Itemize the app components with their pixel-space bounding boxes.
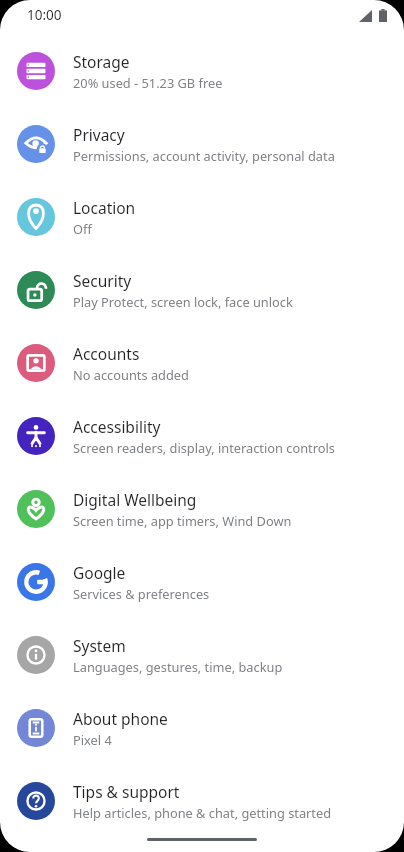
staticText: Location bbox=[73, 197, 136, 218]
staticText: Digital Wellbeing bbox=[73, 489, 197, 510]
button[interactable]: About phone bbox=[0, 691, 404, 764]
button[interactable]: Digital Wellbeing bbox=[0, 472, 404, 545]
button[interactable]: Privacy bbox=[0, 107, 404, 180]
staticText: Help articles, phone & chat, getting sta… bbox=[73, 804, 332, 821]
staticText: Storage bbox=[73, 51, 130, 72]
staticText: Pixel 4 bbox=[73, 731, 112, 748]
staticText: 10:00 bbox=[27, 6, 62, 24]
staticText: Screen readers, display, interaction con… bbox=[73, 439, 335, 456]
staticText: Google bbox=[73, 562, 126, 583]
staticText: Accessibility bbox=[73, 416, 161, 437]
button[interactable]: Accounts bbox=[0, 326, 404, 399]
button[interactable]: Accessibility bbox=[0, 399, 404, 472]
staticText: Tips & support bbox=[73, 781, 180, 802]
staticText: Permissions, account activity, personal … bbox=[73, 147, 335, 164]
staticText: 20% used - 51.23 GB free bbox=[73, 74, 223, 91]
staticText: Off bbox=[73, 220, 92, 237]
button[interactable]: Storage bbox=[0, 34, 404, 107]
button[interactable]: System bbox=[0, 618, 404, 691]
button[interactable]: Location bbox=[0, 180, 404, 253]
button[interactable]: Security bbox=[0, 253, 404, 326]
button[interactable]: Google bbox=[0, 545, 404, 618]
staticText: Security bbox=[73, 270, 132, 291]
staticText: Languages, gestures, time, backup bbox=[73, 658, 283, 675]
staticText: No accounts added bbox=[73, 366, 189, 383]
staticText: System bbox=[73, 635, 126, 656]
staticText: Privacy bbox=[73, 124, 125, 145]
staticText: Accounts bbox=[73, 343, 140, 364]
staticText: Play Protect, screen lock, face unlock bbox=[73, 293, 293, 310]
staticText: Screen time, app timers, Wind Down bbox=[73, 512, 292, 529]
staticText: About phone bbox=[73, 708, 168, 729]
staticText: Services & preferences bbox=[73, 585, 210, 602]
button[interactable]: Tips & support bbox=[0, 764, 404, 837]
